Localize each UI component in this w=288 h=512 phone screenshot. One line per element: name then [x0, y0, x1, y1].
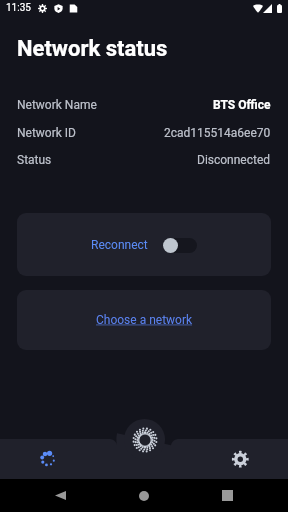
button[interactable]: Reconnect: [17, 213, 271, 276]
button[interactable]: Home: [132, 479, 156, 512]
staticText: Reconnect: [91, 238, 148, 252]
button[interactable]: Scan: [124, 419, 165, 460]
staticText: Choose a network: [96, 313, 193, 327]
button[interactable]: Connection status: [34, 445, 62, 473]
staticText: 11:35: [6, 2, 31, 14]
staticText: Status: [17, 153, 52, 167]
staticText: Network Name: [17, 98, 97, 112]
button[interactable]: Recent apps: [215, 479, 239, 512]
button[interactable]: Back: [48, 479, 72, 512]
staticText: Network ID: [17, 126, 76, 140]
staticText: 2cad115514a6ee70: [164, 126, 271, 140]
staticText: Disconnected: [197, 153, 271, 167]
button[interactable]: Choose a network: [17, 290, 271, 350]
button[interactable]: Settings: [226, 445, 254, 473]
staticText: Network status: [17, 36, 168, 62]
staticText: BTS Office: [213, 98, 271, 112]
